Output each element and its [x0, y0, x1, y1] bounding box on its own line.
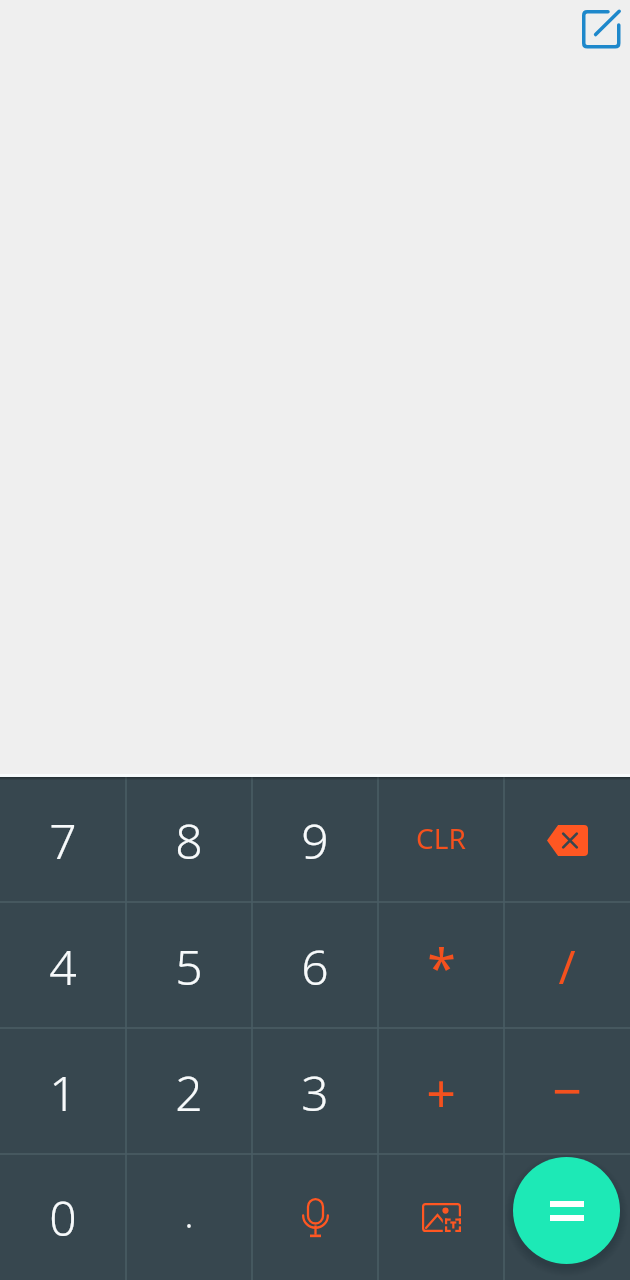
staticText: 1	[49, 1060, 77, 1125]
button[interactable]: 2	[126, 1029, 252, 1155]
button[interactable]: 6	[252, 903, 378, 1029]
button[interactable]: −	[504, 1029, 630, 1155]
button[interactable]: *	[378, 903, 504, 1029]
button[interactable]: 5	[126, 903, 252, 1029]
staticText: 3	[301, 1060, 329, 1125]
staticText: 6	[301, 934, 329, 999]
staticText: 9	[301, 808, 329, 873]
button[interactable]: +	[378, 1029, 504, 1155]
button[interactable]: 1	[0, 1029, 126, 1155]
staticText: 2	[175, 1060, 203, 1125]
button[interactable]: Backspace	[504, 777, 630, 903]
button[interactable]: Equals	[513, 1157, 620, 1264]
button[interactable]: 9	[252, 777, 378, 903]
button[interactable]: 0	[0, 1155, 126, 1280]
button[interactable]: Voice input	[252, 1155, 378, 1280]
button[interactable]: Decimal point	[126, 1155, 252, 1280]
button[interactable]: /	[504, 903, 630, 1029]
staticText: 0	[49, 1185, 77, 1250]
button[interactable]: 4	[0, 903, 126, 1029]
button[interactable]: 8	[126, 777, 252, 903]
button[interactable]: 7	[0, 777, 126, 903]
button[interactable]: 3	[252, 1029, 378, 1155]
staticText: 8	[175, 808, 203, 873]
button[interactable]: CLR	[378, 777, 504, 903]
staticText: CLR	[416, 819, 466, 857]
staticText: 7	[49, 808, 77, 873]
staticText: +	[426, 1057, 456, 1128]
staticText: −	[552, 1054, 582, 1125]
button[interactable]: Edit	[577, 5, 625, 53]
button[interactable]: Equals	[504, 1155, 630, 1280]
staticText: /	[558, 935, 576, 998]
staticText: 4	[49, 934, 77, 999]
button[interactable]: Image search	[378, 1155, 504, 1280]
staticText: *	[427, 931, 456, 1002]
staticText: 5	[175, 934, 203, 999]
